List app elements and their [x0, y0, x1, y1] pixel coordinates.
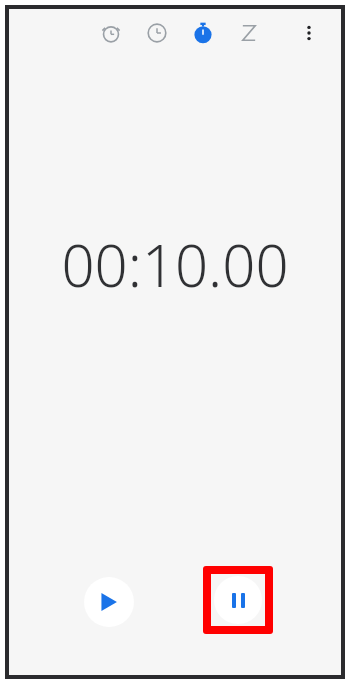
- button[interactable]: Clock: [134, 10, 180, 56]
- button[interactable]: More options: [291, 15, 327, 51]
- button[interactable]: Pause: [211, 574, 265, 626]
- button[interactable]: Stopwatch: [180, 10, 226, 56]
- button[interactable]: Alarm: [88, 10, 134, 56]
- button[interactable]: Start: [84, 577, 134, 627]
- button[interactable]: Timer: [226, 10, 272, 56]
- staticText: 00:10.00: [9, 225, 341, 304]
